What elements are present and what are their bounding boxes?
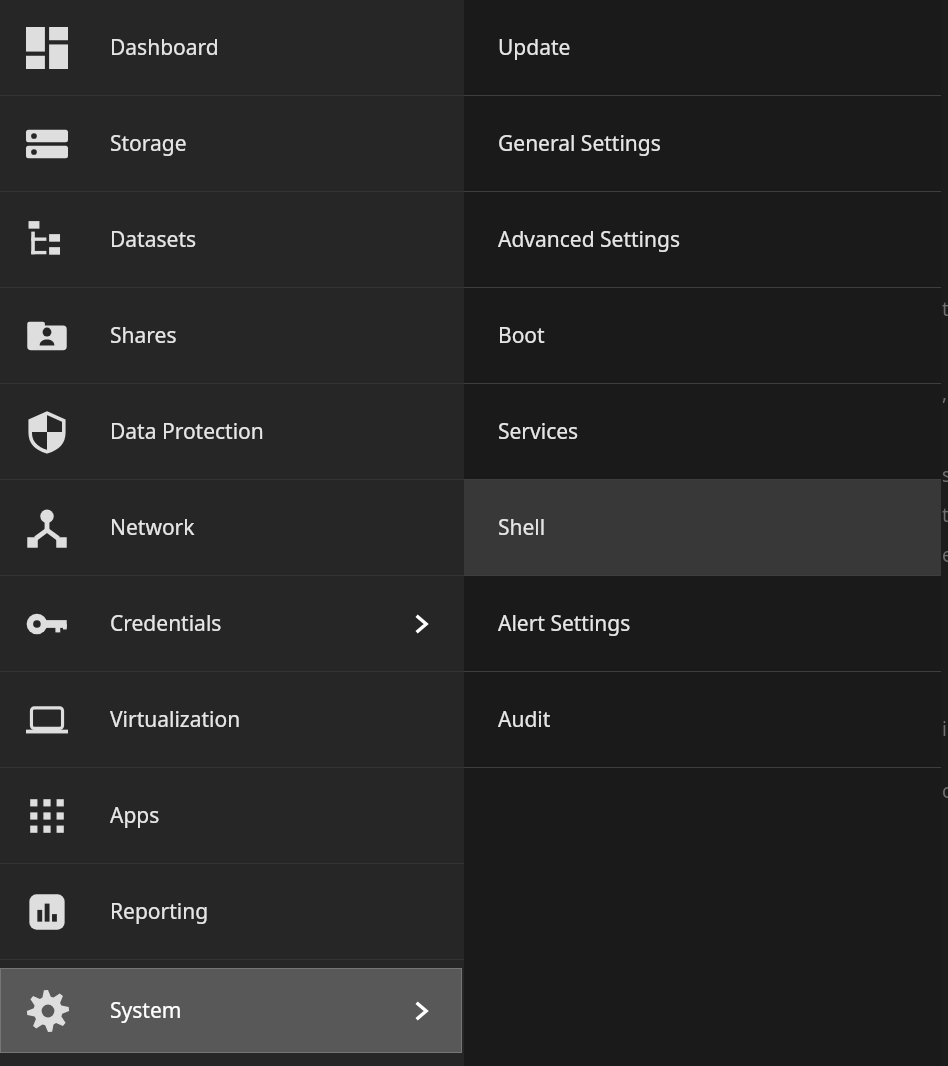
staticText: Services xyxy=(498,417,579,446)
staticText: Virtualization xyxy=(110,705,241,734)
staticText: t xyxy=(942,502,948,528)
button[interactable]: Storage xyxy=(0,96,464,191)
button[interactable]: Data Protection xyxy=(0,384,464,479)
staticText: c xyxy=(942,778,948,804)
button[interactable]: Network xyxy=(0,480,464,575)
button[interactable]: System xyxy=(0,968,462,1053)
staticText: Credentials xyxy=(110,609,222,638)
staticText: i xyxy=(942,716,947,742)
staticText: , xyxy=(942,380,948,406)
staticText: Reporting xyxy=(110,897,209,926)
button[interactable]: Shares xyxy=(0,288,464,383)
staticText: Advanced Settings xyxy=(498,225,680,254)
staticText: Update xyxy=(498,33,571,62)
staticText: Shell xyxy=(498,513,546,542)
staticText: Datasets xyxy=(110,225,197,254)
staticText: General Settings xyxy=(498,129,661,158)
button[interactable]: Alert Settings xyxy=(464,576,941,671)
button[interactable]: Update xyxy=(464,0,941,95)
staticText: Apps xyxy=(110,801,160,830)
button[interactable]: Datasets xyxy=(0,192,464,287)
button[interactable]: Services xyxy=(464,384,941,479)
button[interactable]: Boot xyxy=(464,288,941,383)
button[interactable]: Credentials xyxy=(0,576,464,671)
button[interactable]: Reporting xyxy=(0,864,464,959)
button[interactable]: Virtualization xyxy=(0,672,464,767)
staticText: System xyxy=(110,996,182,1025)
button[interactable]: Dashboard xyxy=(0,0,464,95)
staticText: Data Protection xyxy=(110,417,264,446)
staticText: t xyxy=(942,296,948,322)
staticText: Boot xyxy=(498,321,545,350)
button[interactable]: Apps xyxy=(0,768,464,863)
staticText: Alert Settings xyxy=(498,609,631,638)
staticText: e xyxy=(942,542,948,568)
staticText: Shares xyxy=(110,321,177,350)
staticText: Network xyxy=(110,513,195,542)
staticText: s xyxy=(942,462,948,488)
button[interactable]: General Settings xyxy=(464,96,941,191)
staticText: Dashboard xyxy=(110,33,219,62)
staticText: Storage xyxy=(110,129,187,158)
button[interactable]: Shell xyxy=(464,480,941,575)
button[interactable]: Advanced Settings xyxy=(464,192,941,287)
button[interactable]: Audit xyxy=(464,672,941,767)
staticText: Audit xyxy=(498,705,551,734)
